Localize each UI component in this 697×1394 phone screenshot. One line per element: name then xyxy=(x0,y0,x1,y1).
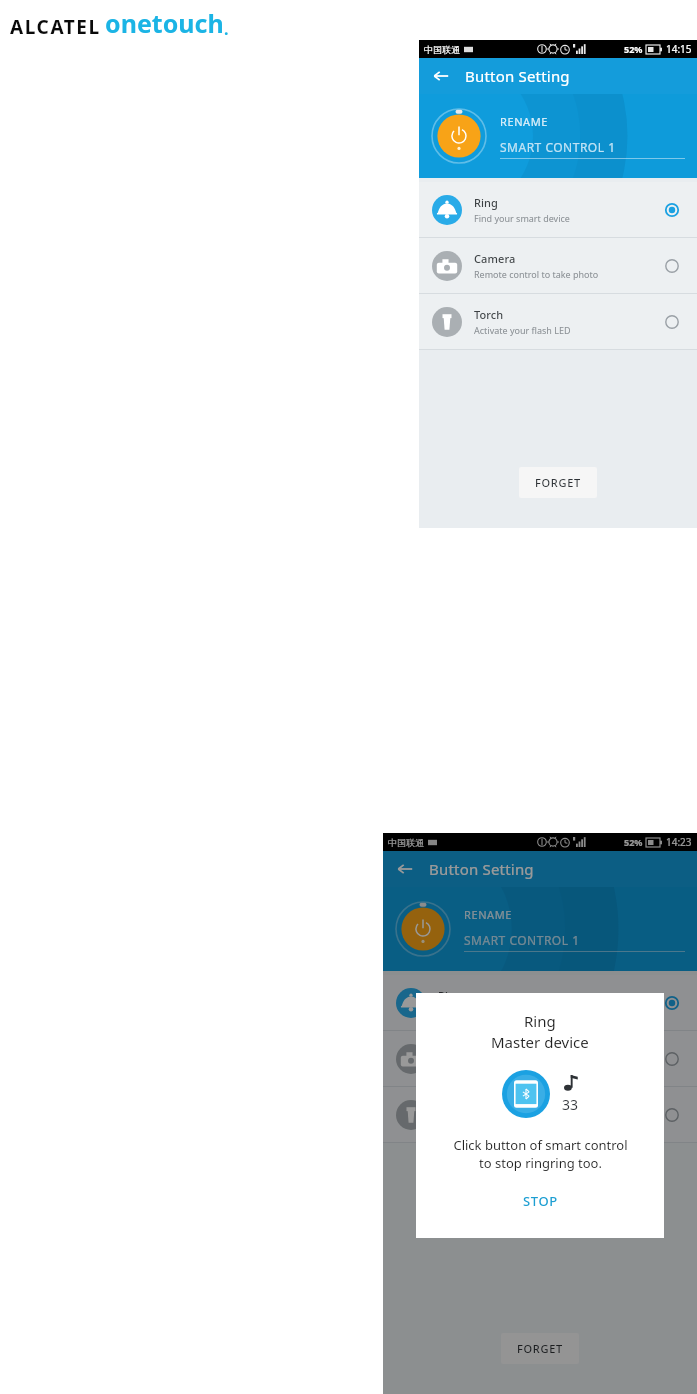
staticText: Button Setting xyxy=(429,859,534,879)
staticText: 14:23 xyxy=(666,835,692,849)
staticText: Find your smart device xyxy=(474,212,570,224)
button[interactable]: Camera xyxy=(419,238,697,293)
staticText: Ring xyxy=(438,988,463,1003)
staticText: SMART CONTROL 1 xyxy=(464,932,580,948)
staticText: RENAME xyxy=(500,114,549,129)
button[interactable]: Select Camera xyxy=(655,1042,689,1076)
staticText: RENAME xyxy=(464,907,513,922)
staticText: onetouch xyxy=(105,6,224,40)
staticText: Button Setting xyxy=(465,66,570,86)
button[interactable]: Select Ring xyxy=(655,193,689,227)
staticText: Camera xyxy=(474,251,516,266)
button[interactable]: Ring xyxy=(383,975,697,1030)
staticText: Remote control to take photo xyxy=(474,268,599,280)
button[interactable]: Select Camera xyxy=(655,249,689,283)
staticText: ALCATEL xyxy=(10,14,101,40)
staticText: 52% xyxy=(624,836,643,848)
staticText: 中国联通 xyxy=(424,44,460,55)
staticText: Activate your flash LED xyxy=(474,324,571,336)
staticText: 52% xyxy=(624,43,643,55)
button[interactable]: Back xyxy=(391,855,419,883)
button[interactable]: STOP xyxy=(503,1188,578,1214)
staticText: Ring xyxy=(524,1011,556,1031)
staticText: Torch xyxy=(474,307,504,322)
staticText: 14:15 xyxy=(666,42,692,56)
staticText: Click button of smart control xyxy=(453,1136,628,1154)
staticText: 33 xyxy=(562,1095,579,1114)
staticText: FORGET xyxy=(517,1341,563,1356)
button[interactable]: Smart control button xyxy=(396,902,450,956)
button[interactable]: Ring xyxy=(419,182,697,237)
button[interactable]: Select Torch xyxy=(655,1098,689,1132)
button[interactable]: Torch xyxy=(383,1087,697,1142)
staticText: STOP xyxy=(523,1192,558,1210)
button[interactable]: Select Ring xyxy=(655,986,689,1020)
staticText: Remote control to take photo xyxy=(438,1061,563,1073)
button[interactable]: FORGET xyxy=(501,1333,579,1364)
staticText: Master device xyxy=(491,1032,589,1052)
staticText: . xyxy=(224,18,229,40)
staticText: Ring xyxy=(474,195,499,210)
button[interactable]: Back xyxy=(427,62,455,90)
button[interactable]: FORGET xyxy=(519,467,597,498)
staticText: SMART CONTROL 1 xyxy=(500,139,616,155)
button[interactable]: Select Torch xyxy=(655,305,689,339)
button[interactable]: Smart control button xyxy=(432,109,486,163)
staticText: 中国联通 xyxy=(388,837,424,848)
button[interactable]: Torch xyxy=(419,294,697,349)
staticText: Activate your flash LED xyxy=(438,1117,535,1129)
staticText: FORGET xyxy=(535,475,581,490)
staticText: to stop ringring too. xyxy=(479,1154,602,1172)
button[interactable]: Camera xyxy=(383,1031,697,1086)
